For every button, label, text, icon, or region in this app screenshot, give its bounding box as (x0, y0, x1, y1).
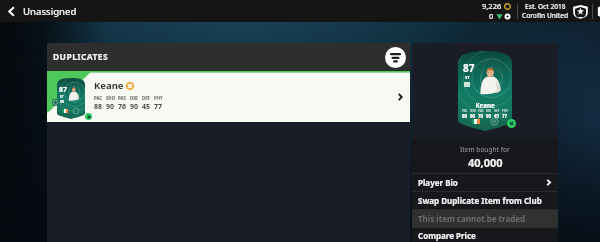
button[interactable]: Back (0, 0, 23, 22)
staticText: Player Bio (418, 177, 458, 188)
staticText: 90 (470, 113, 476, 119)
button[interactable]: Player Bio (412, 174, 558, 191)
staticText: PAC (462, 109, 468, 113)
staticText: 90 (106, 102, 115, 112)
button[interactable]: Filter (385, 47, 406, 68)
staticText: 76 (118, 102, 127, 112)
button[interactable]: Swap Duplicate Item from Club (412, 192, 558, 209)
staticText: 45 (494, 113, 500, 119)
staticText: DRI (130, 95, 138, 101)
staticText: Keane (94, 79, 124, 92)
staticText: DUPLICATES (53, 51, 109, 63)
staticText: PHY (502, 109, 508, 113)
staticText: 9,226 (482, 1, 502, 11)
staticText: ST (60, 95, 64, 99)
staticText: PAS (478, 109, 484, 113)
staticText: Corofin United (522, 11, 569, 20)
staticText: Swap Duplicate Item from Club (418, 195, 542, 206)
staticText: PAC (94, 95, 103, 101)
staticText: DRI (486, 109, 492, 113)
staticText: 40,000 (468, 155, 503, 170)
button[interactable]: Profile (596, 2, 600, 20)
button[interactable]: Club badge (571, 2, 589, 20)
staticText: PAS (118, 95, 126, 101)
staticText: 77 (154, 102, 163, 112)
staticText: 45 (142, 102, 151, 112)
staticText: 0 (489, 11, 494, 21)
staticText: 87 (59, 85, 68, 95)
staticText: 90 (486, 113, 492, 119)
staticText: PHY (154, 95, 163, 101)
staticText: 77 (502, 113, 508, 119)
staticText: Item bought for (460, 145, 510, 154)
staticText: Unassigned (23, 5, 77, 18)
staticText: Est. Oct 2018 (525, 2, 566, 11)
button[interactable]: This item cannot be traded (412, 210, 558, 227)
staticText: This item cannot be traded (418, 213, 526, 224)
staticText: 88 (462, 113, 468, 119)
staticText: Compare Price (418, 230, 476, 241)
staticText: 90 (130, 102, 139, 112)
staticText: ST (465, 75, 470, 81)
staticText: SHO (106, 95, 116, 101)
staticText: 88 (94, 102, 103, 112)
staticText: DEF (494, 109, 500, 113)
staticText: Keane (458, 101, 512, 109)
staticText: SHO (470, 109, 477, 113)
button[interactable]: 87 (47, 71, 410, 122)
button[interactable]: Compare Price (412, 228, 558, 242)
staticText: DEF (142, 95, 150, 101)
staticText: 87 (463, 61, 475, 75)
staticText: 76 (478, 113, 484, 119)
